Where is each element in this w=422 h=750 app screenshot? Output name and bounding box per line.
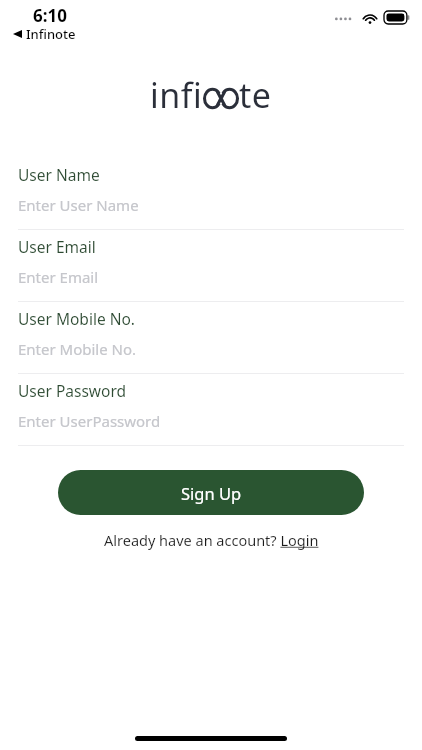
staticText: User Email <box>18 236 96 257</box>
staticText: Already have an account? Login <box>104 530 319 550</box>
button[interactable]: User Mobile No. <box>18 308 404 374</box>
staticText: User Mobile No. <box>18 308 135 329</box>
staticText: te <box>239 72 272 118</box>
staticText: infi <box>150 72 203 118</box>
staticText: User Password <box>18 380 127 401</box>
button[interactable]: User Password <box>18 380 404 446</box>
staticText: Sign Up <box>181 482 242 504</box>
button[interactable]: Sign Up <box>58 470 364 515</box>
staticText: Enter Mobile No. <box>18 339 137 359</box>
staticText: 6:10 <box>33 4 67 27</box>
button[interactable]: Already have an account? Login <box>98 527 325 553</box>
staticText: Enter UserPassword <box>18 411 161 431</box>
staticText: User Name <box>18 164 100 185</box>
staticText: Enter Email <box>18 267 99 287</box>
staticText: Infinote <box>26 25 76 43</box>
button[interactable]: User Email <box>18 236 404 302</box>
button[interactable]: Infinote <box>11 24 78 44</box>
staticText: Enter User Name <box>18 195 139 215</box>
button[interactable]: User Name <box>18 164 404 230</box>
